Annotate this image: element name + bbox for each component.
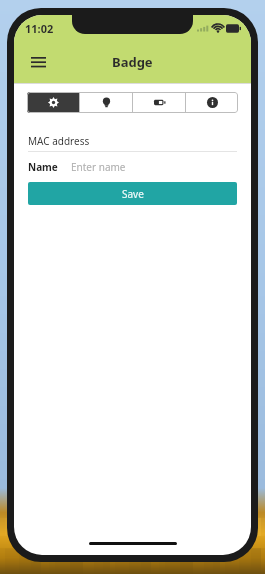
button[interactable]: Info tab (186, 92, 238, 113)
staticText: Enter name (71, 160, 126, 174)
button[interactable]: Battery tab (133, 92, 185, 113)
button[interactable]: Menu (23, 47, 53, 77)
button[interactable]: Save (28, 182, 237, 205)
button[interactable]: Light tab (80, 92, 132, 113)
button[interactable]: Settings tab (27, 92, 79, 113)
staticText: Name (28, 160, 58, 174)
staticText: MAC address (28, 134, 90, 148)
button[interactable]: Name (28, 159, 237, 175)
staticText: Badge (112, 53, 153, 71)
staticText: 11:02 (25, 21, 54, 36)
staticText: Save (122, 187, 144, 201)
